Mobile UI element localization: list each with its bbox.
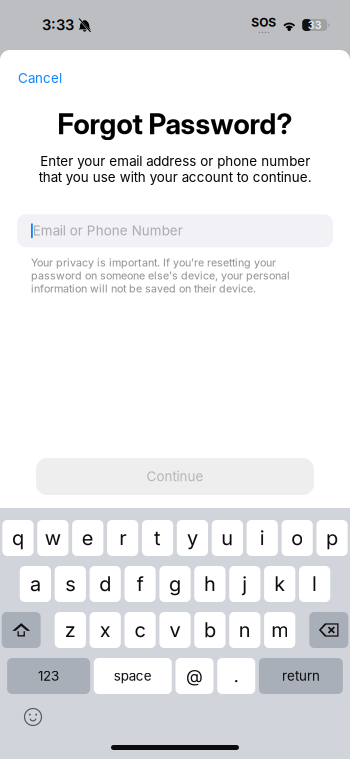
button[interactable]: Shift (2, 612, 41, 648)
staticText: g (169, 572, 181, 596)
staticText: o (291, 526, 303, 550)
staticText: 123 (38, 668, 59, 684)
button[interactable]: f (124, 566, 156, 602)
staticText: Forgot Password? (57, 107, 292, 141)
staticText: return (282, 668, 320, 684)
staticText: . (234, 665, 239, 686)
button[interactable]: e (72, 520, 103, 556)
staticText: Your privacy is important. If you're res… (31, 256, 290, 295)
button[interactable]: Continue (36, 458, 314, 495)
staticText: z (65, 618, 76, 642)
button[interactable]: c (124, 612, 156, 648)
staticText: • • • • (258, 30, 269, 35)
button[interactable]: z (55, 612, 86, 648)
staticText: c (135, 618, 146, 642)
staticText: 33 (308, 18, 322, 31)
button[interactable]: o (282, 520, 313, 556)
button[interactable]: . (217, 658, 255, 694)
button[interactable]: 123 (7, 658, 90, 694)
staticText: k (274, 572, 285, 596)
button[interactable]: h (194, 566, 225, 602)
button[interactable]: Emoji keyboard (20, 704, 46, 730)
staticText: y (187, 526, 198, 550)
button[interactable]: p (316, 520, 348, 556)
staticText: r (119, 526, 126, 550)
staticText: m (271, 618, 288, 642)
staticText: t (154, 526, 161, 550)
button[interactable]: u (212, 520, 243, 556)
button[interactable]: d (90, 566, 121, 602)
staticText: w (45, 526, 61, 550)
button[interactable]: k (264, 566, 295, 602)
staticText: i (260, 526, 265, 550)
staticText: Email or Phone Number (33, 223, 183, 239)
staticText: e (82, 526, 94, 550)
button[interactable]: y (177, 520, 208, 556)
button[interactable]: j (229, 566, 260, 602)
staticText: f (137, 572, 144, 596)
button[interactable]: t (142, 520, 173, 556)
button[interactable]: i (247, 520, 278, 556)
button[interactable]: b (194, 612, 225, 648)
button[interactable]: @ (175, 658, 213, 694)
staticText: l (312, 572, 317, 596)
button[interactable]: m (264, 612, 295, 648)
button[interactable]: r (107, 520, 138, 556)
button[interactable]: a (20, 566, 51, 602)
button[interactable]: w (37, 520, 68, 556)
staticText: s (65, 572, 75, 596)
staticText: Enter your email address or phone number… (38, 153, 311, 185)
button[interactable]: s (55, 566, 86, 602)
staticText: q (12, 526, 24, 550)
staticText: v (169, 618, 180, 642)
button[interactable]: l (299, 566, 330, 602)
staticText: @ (186, 665, 203, 686)
staticText: h (204, 572, 216, 596)
staticText: SOS (251, 15, 276, 30)
staticText: d (99, 572, 111, 596)
button[interactable]: g (159, 566, 191, 602)
button[interactable]: Cancel (13, 64, 67, 92)
staticText: x (100, 618, 111, 642)
staticText: 3:33 (42, 16, 74, 34)
staticText: b (204, 618, 216, 642)
button[interactable]: v (159, 612, 191, 648)
button[interactable]: q (2, 520, 34, 556)
staticText: a (30, 572, 41, 596)
button[interactable]: space (94, 658, 172, 694)
staticText: Continue (146, 468, 203, 484)
staticText: u (221, 526, 233, 550)
staticText: Cancel (18, 70, 62, 86)
button[interactable]: Delete (309, 612, 348, 648)
staticText: n (239, 618, 251, 642)
staticText: space (114, 668, 152, 684)
button[interactable]: x (90, 612, 121, 648)
staticText: p (326, 526, 338, 550)
button[interactable]: n (229, 612, 260, 648)
button[interactable]: return (259, 658, 343, 694)
staticText: j (242, 572, 247, 596)
